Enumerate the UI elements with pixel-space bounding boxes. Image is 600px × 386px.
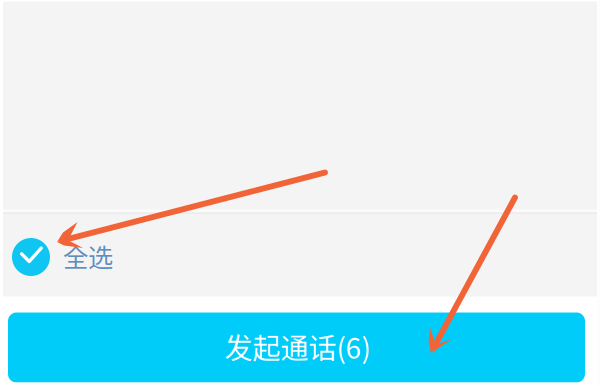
staticText: 发起通话(6) (224, 326, 370, 367)
button[interactable]: 发起通话(6) (0, 312, 600, 382)
button[interactable]: 全选 (0, 213, 600, 296)
staticText: 全选 (63, 238, 113, 274)
